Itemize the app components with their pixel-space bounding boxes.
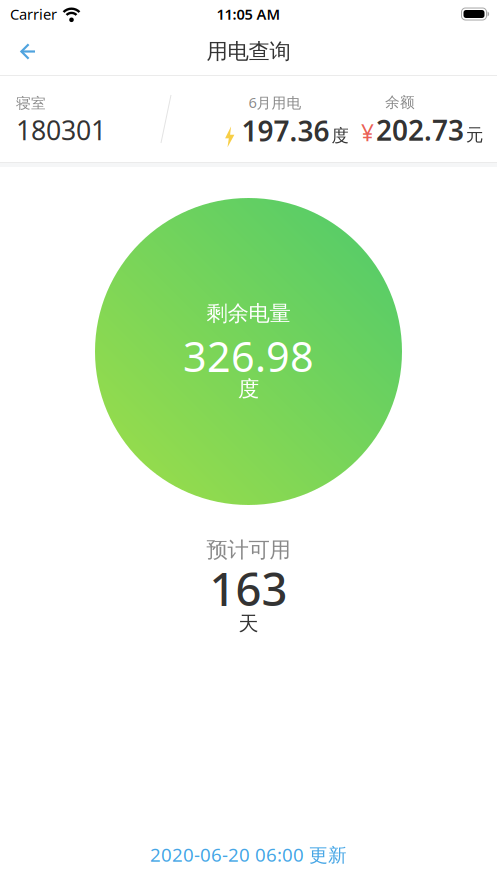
staticText: 11:05 AM	[216, 4, 280, 24]
staticText: 度	[331, 125, 348, 146]
staticText: 326.98	[183, 329, 314, 383]
staticText: ¥	[361, 117, 374, 148]
staticText: 163	[209, 558, 287, 619]
staticText: 天	[238, 611, 258, 636]
staticText: 度	[238, 376, 259, 402]
button[interactable]: Back	[0, 28, 48, 75]
staticText: 寝室	[16, 94, 46, 112]
button[interactable]: 2020-06-20 06:00 更新	[150, 842, 347, 867]
staticText: 余额	[385, 93, 415, 111]
staticText: 剩余电量	[206, 300, 290, 327]
staticText: 180301	[16, 112, 106, 148]
staticText: 元	[466, 124, 483, 146]
staticText: 预计可用	[206, 537, 290, 563]
staticText: 2020-06-20 06:00 更新	[150, 842, 347, 867]
staticText: 用电查询	[206, 38, 290, 65]
staticText: 6月用电	[248, 93, 301, 112]
staticText: 197.36	[241, 112, 329, 149]
staticText: 202.73	[376, 111, 464, 149]
staticText: Carrier	[10, 4, 57, 24]
